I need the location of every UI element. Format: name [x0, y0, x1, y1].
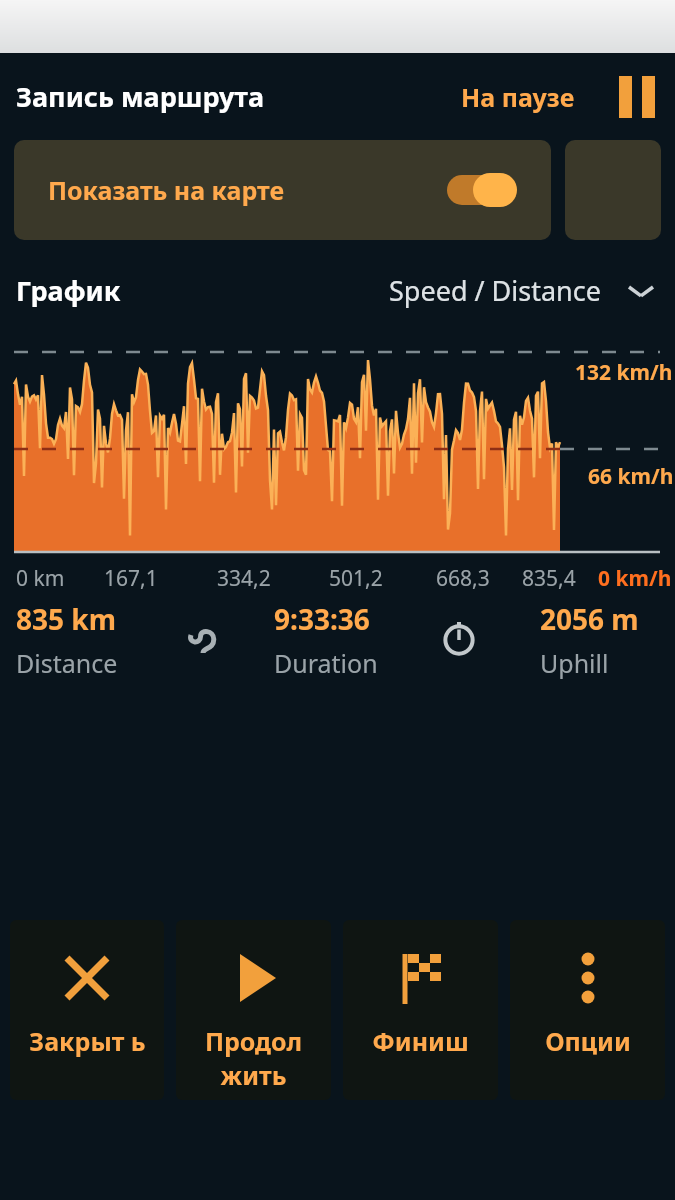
button[interactable]: Продол жить [176, 920, 331, 1100]
staticText: 9:33:36 [274, 600, 370, 638]
staticText: Distance [16, 646, 118, 680]
staticText: 0 km [16, 564, 65, 593]
staticText: 66 km/h [588, 462, 674, 491]
staticText: Speed / Distance [389, 272, 601, 309]
staticText: Показать на карте [48, 173, 285, 207]
staticText: 835 km [16, 600, 116, 638]
staticText: Запись маршрута [16, 78, 265, 115]
staticText: Duration [274, 646, 378, 680]
staticText: 334,2 [217, 564, 271, 593]
staticText: 132 km/h [575, 358, 673, 387]
staticText: 2056 m [540, 600, 639, 638]
button[interactable]: Speed / Distance [389, 272, 653, 309]
staticText: Uphill [540, 646, 609, 680]
staticText: Закрыт ь [29, 1024, 146, 1058]
staticText: Продол жить [176, 1024, 331, 1092]
button[interactable]: Показать на карте [14, 140, 551, 240]
button[interactable]: Pause [461, 76, 655, 118]
button[interactable]: Закрыт ь [10, 920, 164, 1100]
staticText: Финиш [372, 1024, 469, 1058]
staticText: 167,1 [104, 564, 158, 593]
button[interactable]: More [565, 140, 661, 240]
button[interactable]: Финиш [343, 920, 498, 1100]
staticText: График [16, 272, 121, 309]
button[interactable]: Опции [510, 920, 665, 1100]
staticText: 501,2 [329, 564, 383, 593]
staticText: 0 km/h [598, 564, 672, 593]
staticText: На паузе [461, 80, 575, 114]
staticText: 668,3 [436, 564, 490, 593]
staticText: 835,4 [522, 564, 576, 593]
staticText: Опции [545, 1024, 631, 1058]
